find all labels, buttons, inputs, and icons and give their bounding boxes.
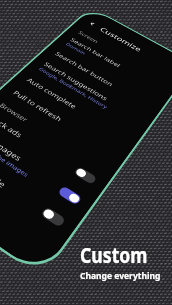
button[interactable]: Search suggestions bbox=[25, 53, 155, 136]
staticText: Search bar label bbox=[69, 37, 123, 69]
button[interactable]: Desktop mode bbox=[0, 136, 81, 241]
button[interactable]: Block ads bbox=[0, 102, 111, 197]
staticText: Custom bbox=[80, 241, 148, 270]
button[interactable]: Back bbox=[85, 18, 99, 28]
button[interactable]: Search bar button bbox=[41, 42, 164, 118]
staticText: Screen bbox=[77, 29, 100, 44]
button[interactable]: Block images bbox=[0, 116, 98, 220]
staticText: Google, Bookmark, History bbox=[37, 66, 109, 110]
button[interactable]: Back bbox=[75, 12, 172, 82]
staticText: Block ads bbox=[0, 112, 25, 140]
staticText: Change everything bbox=[80, 270, 161, 282]
button[interactable]: Auto complete bbox=[12, 67, 142, 151]
button[interactable] bbox=[40, 206, 66, 228]
button[interactable] bbox=[73, 166, 97, 185]
staticText: Pull to refresh bbox=[11, 89, 64, 123]
staticText: Search suggestions bbox=[42, 61, 110, 102]
staticText: Browser bbox=[0, 101, 30, 123]
staticText: Don't load the images bbox=[0, 133, 30, 178]
staticText: Desktop mode bbox=[0, 147, 9, 191]
staticText: Customize bbox=[98, 25, 144, 53]
staticText: Block images bbox=[0, 126, 24, 163]
button[interactable]: Pull to refresh bbox=[0, 79, 131, 167]
staticText: Domain bbox=[64, 41, 87, 56]
staticText: Auto complete bbox=[25, 76, 79, 111]
button[interactable] bbox=[57, 185, 82, 206]
staticText: Search bar button bbox=[53, 50, 115, 88]
button[interactable]: Search bar label bbox=[53, 30, 172, 105]
